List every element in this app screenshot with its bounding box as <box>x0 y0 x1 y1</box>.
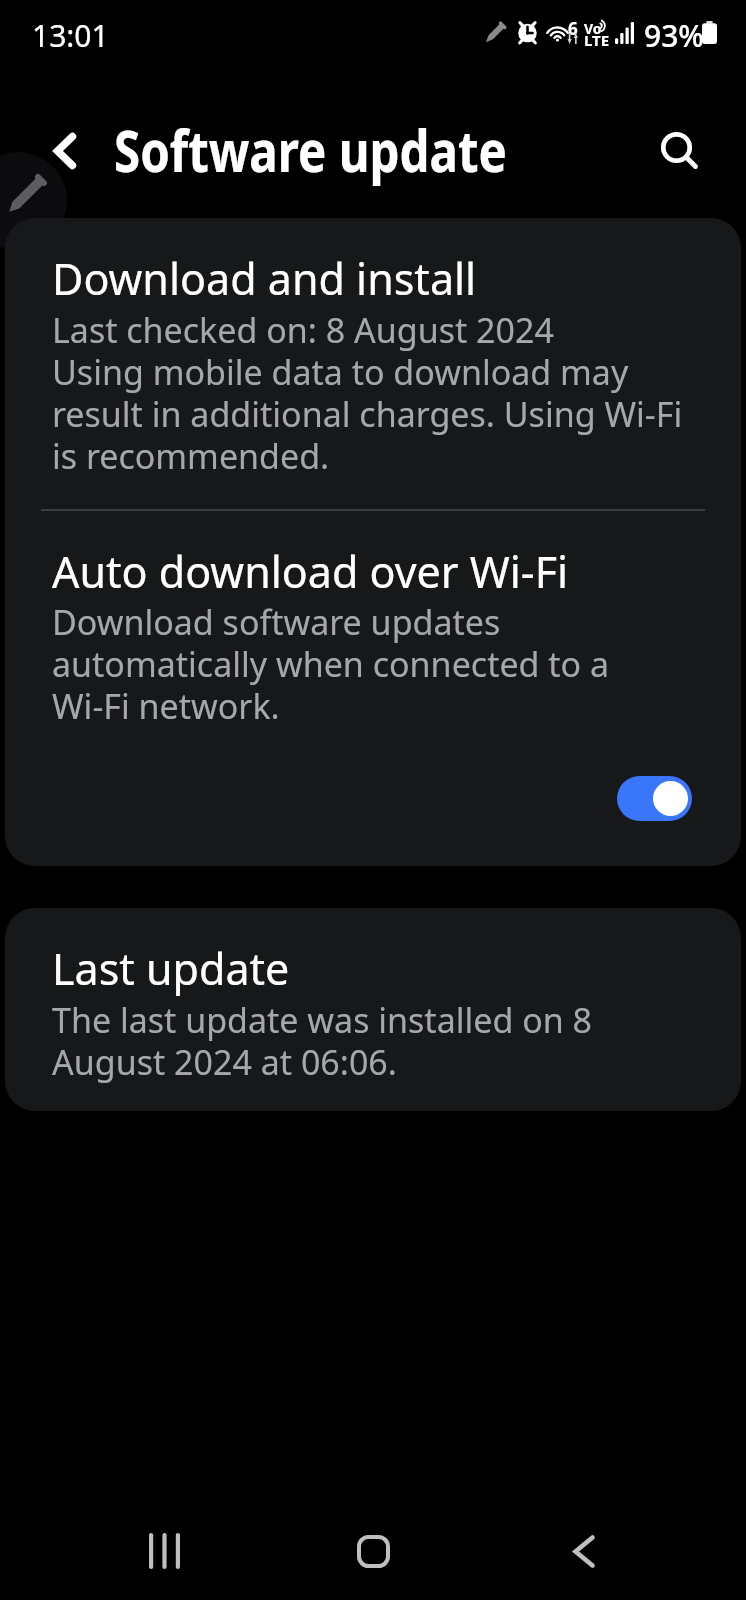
staticText: Auto download over Wi-Fi <box>52 542 569 601</box>
button[interactable] <box>5 511 741 866</box>
staticText: 93% <box>644 15 704 56</box>
staticText: Vo <box>584 19 602 38</box>
button[interactable]: Home <box>323 1501 423 1600</box>
staticText: LTE <box>584 30 610 50</box>
staticText: Download and install <box>52 249 477 308</box>
button[interactable]: Navigate up <box>38 133 90 171</box>
button[interactable]: Last update <box>5 908 741 1111</box>
staticText: 6 <box>568 17 578 40</box>
button[interactable]: Search <box>650 120 712 182</box>
button[interactable] <box>5 218 741 510</box>
button[interactable]: Recent apps <box>114 1501 214 1600</box>
staticText: Download software updates automatically … <box>52 599 610 729</box>
button[interactable]: Auto download over Wi-Fi toggle <box>617 776 692 821</box>
staticText: Last checked on: 8 August 2024 Using mob… <box>52 307 683 479</box>
staticText: Software update <box>114 110 507 189</box>
staticText: Last update <box>52 939 290 998</box>
staticText: 13:01 <box>32 15 109 56</box>
button[interactable]: S Pen <box>0 152 67 250</box>
staticText: The last update was installed on 8 Augus… <box>52 997 593 1085</box>
button[interactable]: Back <box>534 1501 634 1600</box>
